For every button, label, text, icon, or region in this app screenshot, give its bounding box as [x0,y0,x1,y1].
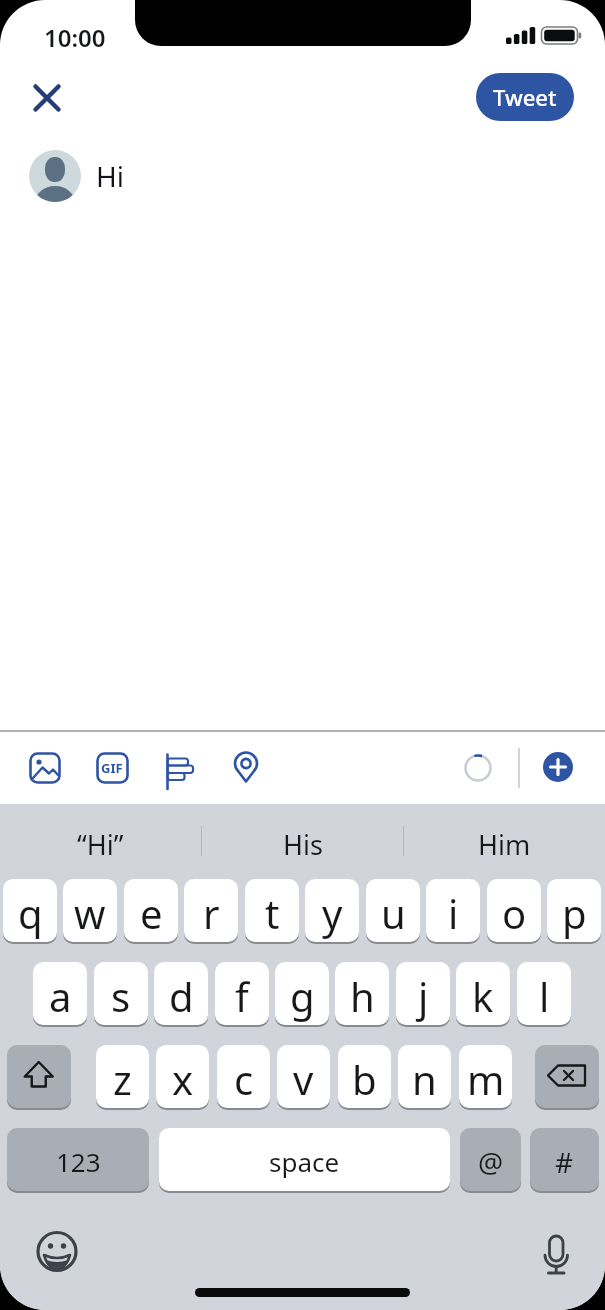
button[interactable]: r [184,879,238,942]
staticText: 123 [56,1144,101,1179]
button[interactable]: # [530,1128,599,1191]
button[interactable]: e [124,879,178,942]
button[interactable]: GIF [91,747,133,789]
staticText: # [555,1143,574,1181]
staticText: i [448,886,459,940]
button[interactable]: o [487,879,541,942]
button[interactable]: d [154,962,208,1025]
staticText: g [290,969,315,1023]
staticText: o [502,886,527,940]
button[interactable]: “Hi” [0,810,201,878]
staticText: m [467,1052,505,1106]
button[interactable]: q [3,879,57,942]
button[interactable]: f [215,962,269,1025]
staticText: GIF [101,759,123,777]
staticText: y [322,886,343,940]
button[interactable]: i [426,879,480,942]
button[interactable] [7,1045,71,1108]
staticText: r [203,886,220,940]
button[interactable]: t [245,879,299,942]
button[interactable]: l [517,962,571,1025]
staticText: v [293,1052,314,1106]
staticText: “Hi” [77,826,124,863]
staticText: l [539,969,550,1023]
button[interactable]: a [33,962,87,1025]
staticText: Hi [96,157,124,195]
staticText: @ [478,1143,504,1181]
button[interactable]: j [396,962,450,1025]
button[interactable]: b [338,1045,391,1108]
button[interactable]: w [63,879,117,942]
button[interactable]: s [94,962,148,1025]
staticText: Him [478,826,531,863]
button[interactable]: u [366,879,420,942]
button[interactable]: Tweet [476,73,574,121]
staticText: space [269,1144,340,1179]
staticText: s [111,969,131,1023]
button[interactable]: p [547,879,601,942]
button[interactable]: His [202,810,403,878]
button[interactable] [536,1228,578,1280]
button[interactable]: m [459,1045,512,1108]
staticText: c [234,1052,254,1106]
staticText: j [418,969,429,1023]
button[interactable] [226,745,268,787]
button[interactable]: c [217,1045,270,1108]
staticText: a [49,969,72,1023]
staticText: n [412,1052,437,1106]
button[interactable]: v [277,1045,330,1108]
button[interactable]: z [96,1045,149,1108]
button[interactable]: h [335,962,389,1025]
button[interactable]: @ [460,1128,521,1191]
staticText: d [169,969,194,1023]
button[interactable]: 123 [7,1128,149,1191]
staticText: Tweet [493,82,557,112]
button[interactable] [33,1229,81,1277]
button[interactable]: Him [404,810,605,878]
staticText: p [562,886,587,940]
staticText: t [265,886,280,940]
button[interactable]: g [275,962,329,1025]
button[interactable] [24,747,66,789]
button[interactable]: space [159,1128,450,1191]
button[interactable]: x [156,1045,209,1108]
staticText: h [350,969,375,1023]
staticText: x [172,1052,194,1106]
staticText: q [18,886,43,940]
button[interactable]: y [305,879,359,942]
staticText: w [74,886,106,940]
button[interactable] [535,1045,599,1108]
staticText: e [140,886,163,940]
staticText: His [283,826,323,863]
staticText: u [381,886,406,940]
staticText: b [352,1052,377,1106]
staticText: 10:00 [44,21,106,54]
button[interactable]: k [456,962,510,1025]
button[interactable] [543,752,573,782]
staticText: z [113,1052,132,1106]
staticText: f [235,969,249,1023]
button[interactable] [26,77,68,119]
button[interactable] [159,747,201,789]
button[interactable]: n [398,1045,451,1108]
staticText: k [472,969,494,1023]
